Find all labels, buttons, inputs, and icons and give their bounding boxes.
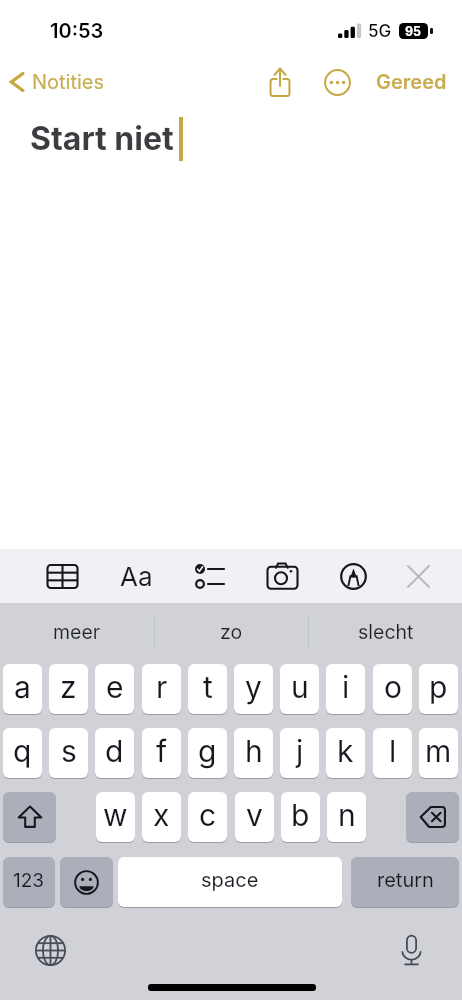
staticText: 123 [13, 869, 45, 892]
button[interactable]: c [188, 792, 227, 842]
button[interactable]: Emoji [60, 857, 113, 907]
button[interactable]: x [142, 792, 181, 842]
button[interactable]: v [235, 792, 274, 842]
button[interactable]: b [281, 792, 320, 842]
button[interactable]: a [3, 664, 42, 714]
button[interactable]: More options [317, 62, 357, 102]
button[interactable]: r [142, 664, 181, 714]
button[interactable]: e [95, 664, 134, 714]
button[interactable]: j [280, 728, 319, 778]
button[interactable]: z [49, 664, 88, 714]
button[interactable]: 123 [3, 857, 55, 907]
staticText: a [14, 669, 31, 705]
staticText: y [245, 669, 262, 705]
button[interactable]: u [280, 664, 319, 714]
button[interactable]: i [326, 664, 365, 714]
staticText: m [425, 733, 452, 769]
staticText: g [198, 733, 217, 769]
button[interactable]: h [234, 728, 273, 778]
staticText: p [429, 669, 448, 705]
button[interactable]: Dictation [389, 928, 433, 972]
staticText: space [201, 868, 259, 892]
button[interactable]: m [419, 728, 458, 778]
staticText: 95 [405, 24, 422, 39]
staticText: j [296, 733, 304, 769]
staticText: return [377, 868, 434, 892]
staticText: e [106, 669, 124, 705]
button[interactable]: w [96, 792, 135, 842]
button[interactable]: k [326, 728, 365, 778]
staticText: w [103, 797, 128, 833]
button[interactable]: g [188, 728, 227, 778]
staticText: zo [220, 620, 243, 644]
staticText: c [199, 797, 217, 833]
button[interactable]: Notities [10, 64, 105, 100]
staticText: x [153, 797, 170, 833]
button[interactable]: y [234, 664, 273, 714]
button[interactable]: Backspace [406, 792, 459, 842]
button[interactable]: t [188, 664, 227, 714]
staticText: h [245, 733, 263, 769]
button[interactable]: zo [155, 603, 308, 661]
staticText: v [246, 797, 263, 833]
button[interactable]: slecht [309, 603, 462, 661]
staticText: q [13, 733, 32, 769]
staticText: i [342, 669, 350, 705]
button[interactable]: return [351, 857, 459, 907]
staticText: t [203, 669, 213, 705]
staticText: b [291, 797, 310, 833]
staticText: u [291, 669, 309, 705]
staticText: slecht [358, 620, 414, 644]
button[interactable]: Insert table [40, 554, 84, 598]
staticText: k [337, 733, 354, 769]
button[interactable]: Checklist [187, 554, 231, 598]
button[interactable]: Markup [331, 554, 375, 598]
staticText: Notities [32, 70, 105, 94]
button[interactable]: n [327, 792, 366, 842]
staticText: o [384, 669, 402, 705]
staticText: f [156, 733, 168, 769]
button[interactable]: l [373, 728, 412, 778]
staticText: s [61, 733, 77, 769]
button[interactable]: Share [260, 62, 300, 102]
staticText: r [156, 669, 168, 705]
button[interactable]: d [95, 728, 134, 778]
staticText: l [389, 733, 397, 769]
button[interactable]: space [118, 857, 342, 907]
button[interactable]: Next keyboard [28, 928, 72, 972]
staticText: z [60, 669, 77, 705]
staticText: 5G [368, 21, 392, 42]
staticText: d [105, 733, 124, 769]
button[interactable]: meer [0, 603, 154, 661]
button[interactable]: f [142, 728, 181, 778]
button[interactable]: o [373, 664, 412, 714]
staticText: n [338, 797, 356, 833]
staticText: 10:53 [50, 19, 104, 43]
button[interactable]: p [419, 664, 458, 714]
button[interactable]: Gereed [368, 64, 455, 100]
button[interactable]: Shift [3, 792, 56, 842]
button[interactable]: Close keyboard [396, 554, 440, 598]
button[interactable]: s [49, 728, 88, 778]
button[interactable]: Format [114, 554, 158, 598]
staticText: meer [53, 620, 101, 644]
button[interactable]: Camera [260, 554, 304, 598]
staticText: Aa [120, 561, 153, 592]
staticText: Gereed [376, 70, 447, 94]
staticText: Start niet [30, 119, 174, 158]
button[interactable]: q [3, 728, 42, 778]
